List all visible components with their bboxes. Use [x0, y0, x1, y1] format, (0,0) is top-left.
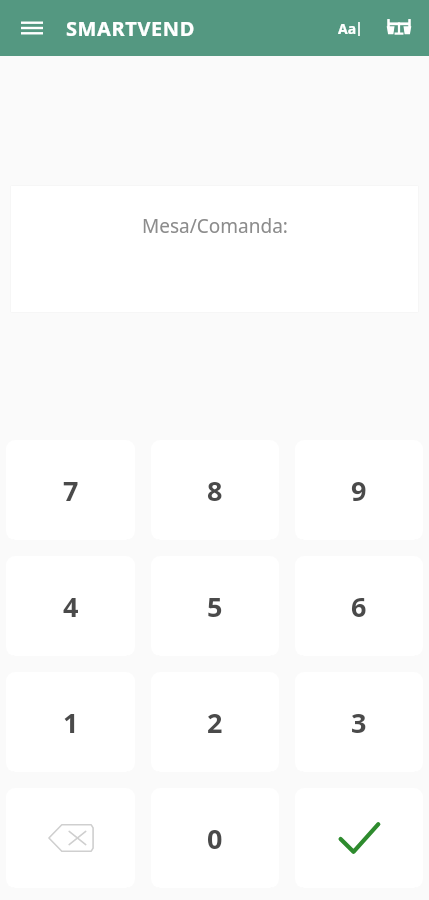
- button[interactable]: 3: [295, 672, 423, 772]
- button[interactable]: 0: [151, 788, 279, 888]
- button[interactable]: 4: [6, 556, 135, 656]
- button[interactable]: 1: [6, 672, 135, 772]
- button[interactable]: 2: [151, 672, 279, 772]
- button[interactable]: Tables: [375, 4, 423, 52]
- button[interactable]: 6: [295, 556, 423, 656]
- staticText: 0: [207, 820, 223, 857]
- staticText: 1: [63, 704, 79, 741]
- staticText: 3: [351, 704, 367, 741]
- button[interactable]: Text input mode: [327, 6, 371, 50]
- button[interactable]: 5: [151, 556, 279, 656]
- staticText: 6: [351, 588, 367, 625]
- staticText: Mesa/Comanda:: [142, 213, 288, 239]
- staticText: 8: [207, 472, 223, 509]
- button[interactable]: 8: [151, 440, 279, 540]
- staticText: Aa: [338, 19, 357, 38]
- staticText: SMARTVEND: [66, 15, 195, 42]
- staticText: 4: [63, 588, 79, 625]
- button[interactable]: Menu: [8, 4, 56, 52]
- button[interactable]: Confirm: [295, 788, 423, 888]
- button[interactable]: 9: [295, 440, 423, 540]
- button[interactable]: Mesa/Comanda:: [10, 185, 419, 313]
- staticText: 2: [207, 704, 223, 741]
- button[interactable]: Backspace: [6, 788, 135, 888]
- staticText: 7: [63, 472, 79, 509]
- staticText: 5: [207, 588, 223, 625]
- staticText: 9: [351, 472, 367, 509]
- button[interactable]: 7: [6, 440, 135, 540]
